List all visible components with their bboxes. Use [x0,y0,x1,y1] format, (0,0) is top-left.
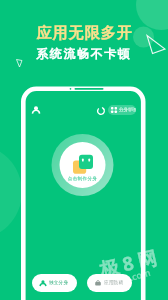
staticText: 独立分身 [49,280,69,286]
button[interactable]: 应用隐藏 [87,274,132,292]
button[interactable]: 独立分身 [32,274,77,292]
button[interactable]: 点击制作分身 [59,142,106,189]
staticText: 极8网 [97,243,164,283]
button[interactable]: Refresh [94,104,107,117]
staticText: 应用隐藏 [104,280,124,286]
staticText: 点击制作分身 [59,176,106,182]
staticText: jibapp.com [102,266,152,290]
staticText: 分身管理 [119,107,136,113]
button[interactable]: Account [29,103,43,117]
button[interactable]: 分身管理 [108,105,136,115]
staticText: 系统流畅不卡顿 [36,46,132,61]
staticText: 应用无限多开 [36,24,132,43]
